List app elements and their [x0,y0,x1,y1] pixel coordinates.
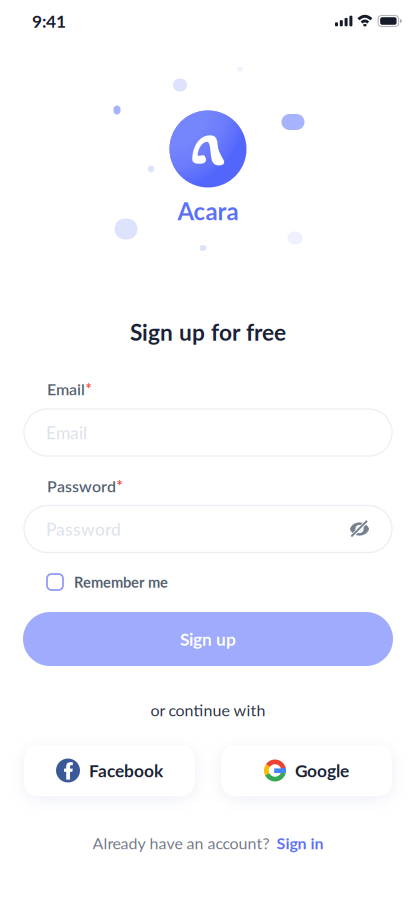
staticText: * [85,379,91,397]
button[interactable]: Google [221,745,392,796]
staticText: Sign in [276,833,323,853]
staticText: Google [295,760,349,781]
staticText: Password [46,519,121,539]
staticText: 9:41 [32,11,66,31]
staticText: Sign up [180,629,236,649]
staticText: Already have an account? [92,833,269,853]
button[interactable]: Remember me [47,569,277,595]
staticText: * [116,476,122,494]
staticText: Facebook [89,760,163,781]
button[interactable]: Already have an account? [58,831,358,855]
staticText: Acara [177,197,238,225]
staticText: Email [46,422,87,443]
button[interactable]: Sign up [23,612,393,666]
staticText: or continue with [150,700,265,720]
button[interactable]: Facebook [24,745,195,796]
staticText: Password [47,476,116,496]
staticText: Remember me [74,573,168,591]
staticText: Email [47,379,85,399]
staticText: Sign up for free [130,318,286,346]
